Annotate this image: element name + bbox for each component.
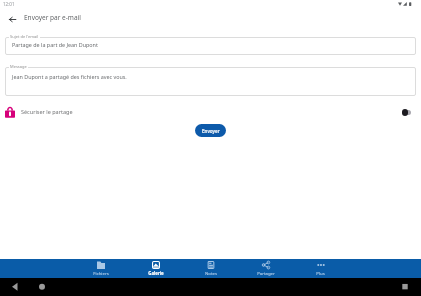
button[interactable]: Sécuriser le partage — [399, 106, 415, 119]
button[interactable]: Envoyer — [195, 124, 226, 137]
staticText: Envoyer par e-mail — [24, 13, 81, 22]
staticText: Fichiers — [93, 270, 109, 276]
staticText: Galerie — [148, 270, 164, 276]
staticText: 12:01 — [3, 1, 15, 7]
button[interactable]: Partage de la part de Jean Dupont — [5, 37, 416, 55]
staticText: Sécuriser le partage — [21, 108, 73, 115]
button[interactable]: Back — [6, 13, 18, 25]
button[interactable]: Plus — [293, 259, 348, 278]
staticText: Partage de la part de Jean Dupont — [12, 41, 98, 48]
button[interactable]: Jean Dupont a partagé des fichiers avec … — [5, 67, 416, 96]
staticText: Sujet de l'email — [10, 34, 39, 39]
staticText: Notes — [205, 270, 217, 276]
staticText: Message — [10, 64, 27, 69]
button[interactable]: Sécuriser le partage — [5, 103, 73, 120]
button[interactable]: Partager — [238, 259, 293, 278]
staticText: Plus — [316, 270, 325, 276]
staticText: Envoyer — [202, 128, 220, 134]
staticText: Partager — [257, 270, 275, 276]
button[interactable]: Galerie — [128, 259, 183, 278]
button[interactable]: Notes — [183, 259, 238, 278]
button[interactable]: Fichiers — [73, 259, 128, 278]
staticText: Jean Dupont a partagé des fichiers avec … — [12, 73, 127, 80]
